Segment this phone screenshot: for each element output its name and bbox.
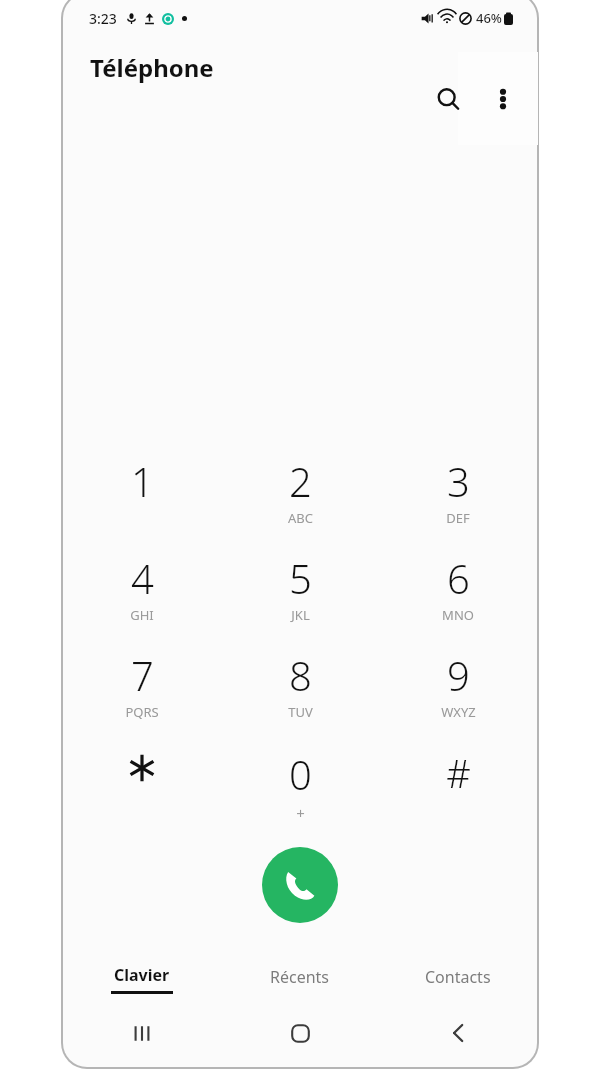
staticText: 5: [289, 551, 312, 605]
button[interactable]: 1: [63, 446, 221, 543]
button[interactable]: 4: [63, 543, 221, 640]
button[interactable]: #: [379, 737, 537, 829]
button[interactable]: Back: [379, 1013, 537, 1053]
staticText: 7: [131, 648, 154, 702]
staticText: ABC: [288, 509, 313, 527]
staticText: TUV: [288, 703, 313, 721]
staticText: 2: [289, 454, 312, 508]
staticText: 3: [447, 454, 470, 508]
button[interactable]: More options: [485, 81, 521, 117]
staticText: 3:23: [89, 9, 117, 28]
button[interactable]: 8: [221, 640, 379, 737]
staticText: PQRS: [125, 703, 159, 721]
button[interactable]: 0: [221, 737, 379, 829]
staticText: DEF: [446, 509, 470, 527]
staticText: 8: [289, 648, 312, 702]
button[interactable]: Recent apps: [63, 1013, 221, 1053]
button[interactable]: Contacts: [379, 957, 537, 1001]
staticText: +: [296, 803, 305, 823]
button[interactable]: [63, 737, 221, 829]
staticText: 4: [131, 551, 154, 605]
button[interactable]: Search: [430, 81, 466, 117]
button[interactable]: Récents: [221, 957, 379, 1001]
staticText: 6: [447, 551, 470, 605]
staticText: 1: [131, 454, 154, 508]
staticText: Contacts: [425, 966, 491, 988]
button[interactable]: Call: [262, 847, 338, 923]
button[interactable]: 2: [221, 446, 379, 543]
staticText: JKL: [291, 606, 310, 624]
staticText: Clavier: [114, 964, 170, 986]
staticText: Récents: [270, 966, 330, 988]
button[interactable]: Clavier: [63, 957, 221, 1001]
button[interactable]: 9: [379, 640, 537, 737]
button[interactable]: Home: [221, 1013, 379, 1053]
button[interactable]: 7: [63, 640, 221, 737]
staticText: #: [446, 747, 471, 799]
staticText: MNO: [442, 606, 474, 624]
staticText: WXYZ: [441, 703, 476, 721]
staticText: 9: [447, 648, 470, 702]
button[interactable]: 3: [379, 446, 537, 543]
staticText: 0: [289, 747, 312, 801]
button[interactable]: 6: [379, 543, 537, 640]
staticText: 46%: [476, 9, 502, 27]
staticText: Téléphone: [90, 51, 214, 84]
button[interactable]: 5: [221, 543, 379, 640]
staticText: GHI: [130, 606, 154, 624]
